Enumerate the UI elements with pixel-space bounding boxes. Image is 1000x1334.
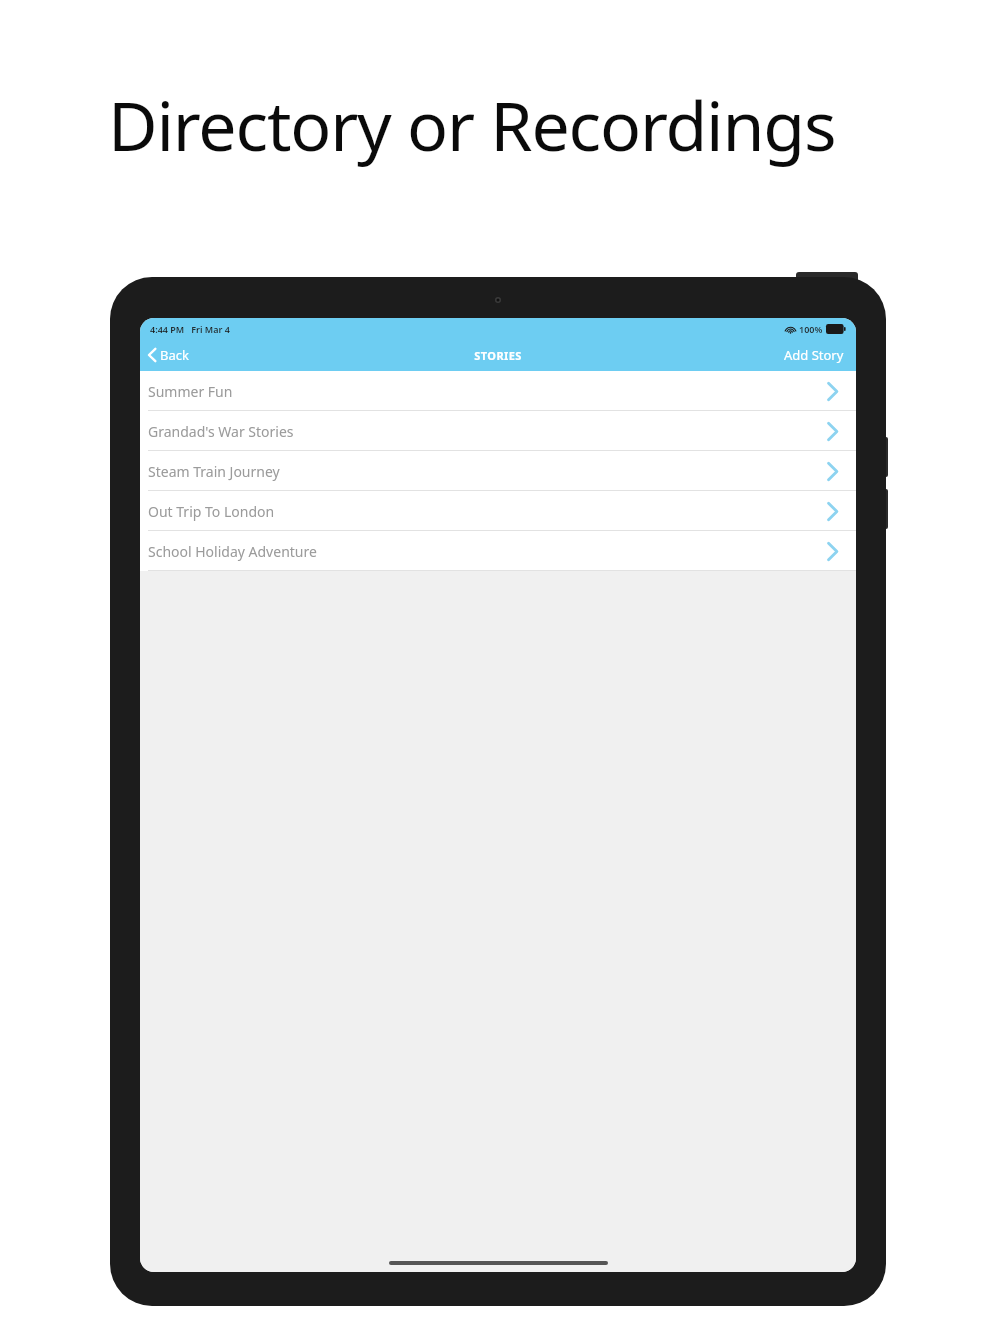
staticText: Add Story	[784, 346, 844, 364]
staticText: School Holiday Adventure	[148, 542, 317, 561]
staticText: Directory or Recordings	[108, 78, 836, 171]
button[interactable]: Grandad's War Stories	[140, 411, 856, 451]
button[interactable]: Back	[140, 339, 201, 371]
staticText: Grandad's War Stories	[148, 422, 294, 441]
button[interactable]: Summer Fun	[140, 371, 856, 411]
button[interactable]: Steam Train Journey	[140, 451, 856, 491]
other: Home indicator	[389, 1261, 608, 1265]
staticText: 4:44 PM Fri Mar 4	[150, 323, 230, 335]
button[interactable]: Out Trip To London	[140, 491, 856, 531]
staticText: Out Trip To London	[148, 502, 275, 521]
staticText: Back	[160, 346, 189, 364]
staticText: Steam Train Journey	[148, 462, 280, 481]
button[interactable]: Add Story	[772, 339, 856, 371]
button[interactable]: School Holiday Adventure	[140, 531, 856, 571]
staticText: Summer Fun	[148, 382, 233, 401]
staticText: STORIES	[474, 348, 522, 363]
staticText: 100%	[799, 323, 823, 335]
